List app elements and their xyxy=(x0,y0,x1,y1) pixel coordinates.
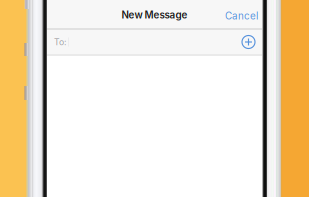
staticText: Cancel xyxy=(225,10,258,22)
button[interactable]: Cancel xyxy=(223,5,260,27)
staticText: To: xyxy=(54,37,66,47)
button[interactable]: Add contact xyxy=(241,34,256,49)
button[interactable]: To: xyxy=(47,30,262,54)
staticText: New Message xyxy=(121,9,187,21)
